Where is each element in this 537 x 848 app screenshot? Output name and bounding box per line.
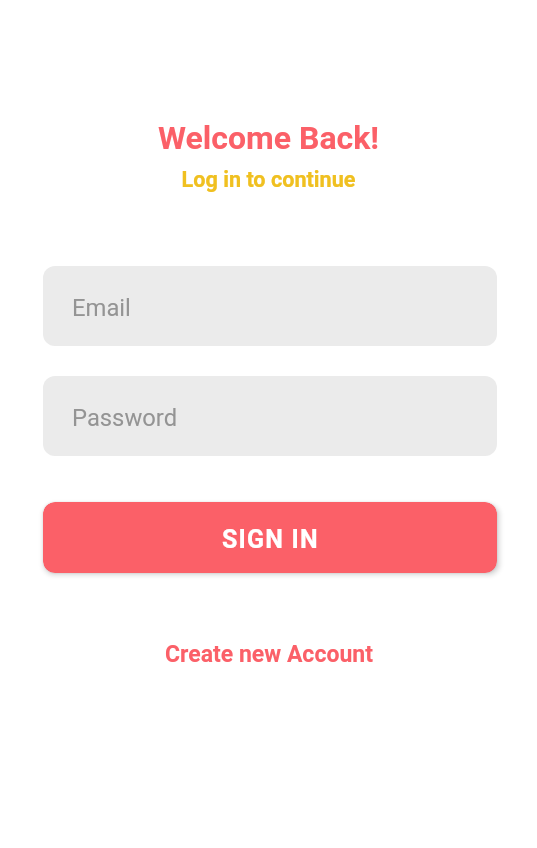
staticText: Welcome Back! bbox=[0, 119, 537, 157]
staticText: Email bbox=[72, 294, 131, 322]
button[interactable]: SIGN IN bbox=[43, 502, 497, 573]
button[interactable]: Email input field bbox=[43, 266, 497, 346]
staticText: Create new Account bbox=[165, 641, 373, 668]
staticText: Log in to continue bbox=[0, 167, 537, 192]
button[interactable]: Create new Account bbox=[155, 635, 383, 674]
button[interactable]: Password input field bbox=[43, 376, 497, 456]
staticText: Password bbox=[72, 404, 178, 432]
staticText: SIGN IN bbox=[222, 525, 319, 554]
